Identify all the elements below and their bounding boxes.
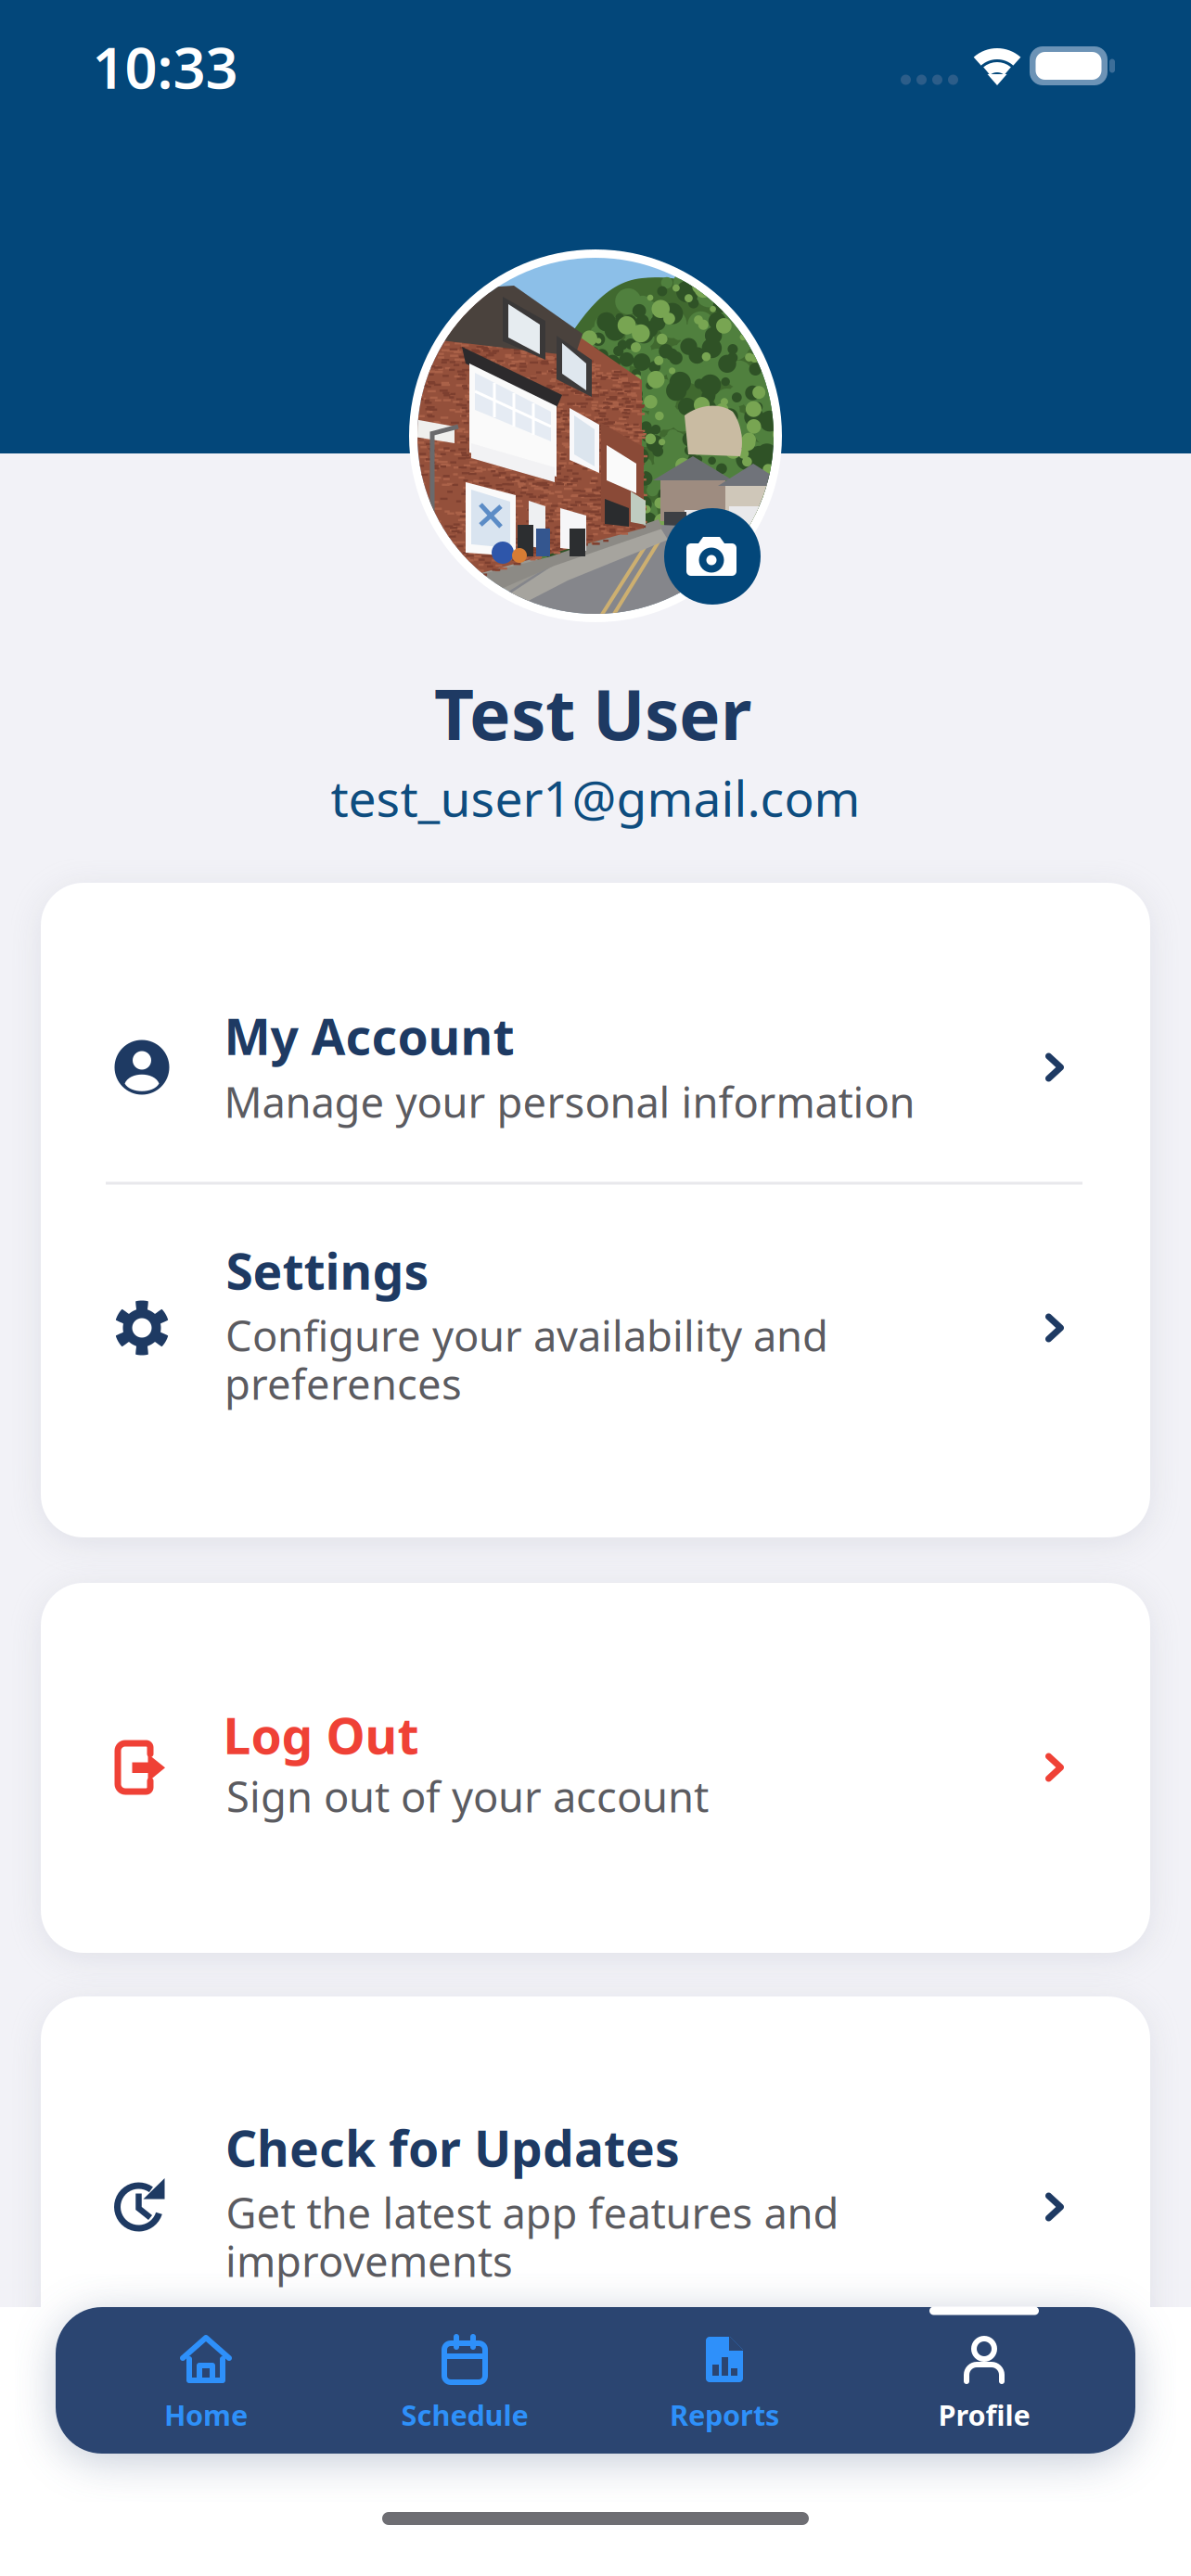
staticText: Reports [670,2396,779,2433]
button[interactable]: My Account [41,883,1150,1183]
button[interactable]: Home [76,2307,336,2454]
staticText: Get the latest app features and [226,2185,839,2240]
button[interactable]: Change profile photo [664,508,761,605]
staticText: improvements [225,2233,513,2289]
staticText: 10:33 [92,29,238,105]
staticText: Profile [938,2396,1030,2433]
staticText: preferences [224,1356,462,1411]
button[interactable]: Profile [854,2307,1114,2454]
staticText: Configure your availability and [225,1307,828,1363]
staticText: Schedule [401,2396,528,2433]
button[interactable]: Schedule [335,2307,595,2454]
staticText: Log Out [223,1702,419,1768]
staticText: My Account [224,1003,514,1069]
button[interactable]: Log Out [41,1583,1150,1953]
button[interactable]: Check for Updates [41,1996,1150,2366]
staticText: Check for Updates [225,2115,680,2180]
staticText: Sign out of your account [226,1768,709,1824]
staticText: Home [164,2396,248,2433]
button[interactable]: Reports [595,2307,854,2454]
staticText: Manage your personal information [224,1074,915,1130]
staticText: Test User [434,667,751,759]
staticText: Settings [226,1238,429,1303]
staticText: test_user1@gmail.com [331,765,860,830]
button[interactable]: Settings [41,1183,1150,1537]
